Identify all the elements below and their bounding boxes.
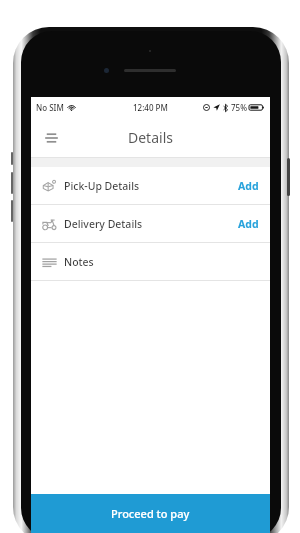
staticText: Notes [64,255,94,269]
staticText: Pick-Up Details [64,179,140,193]
button[interactable]: Notes [31,243,270,280]
staticText: 12:40 PM [133,102,168,113]
staticText: Proceed to pay [111,506,190,521]
button[interactable]: Proceed to pay [31,494,270,533]
button[interactable]: Menu [38,125,64,151]
staticText: 75% [231,102,247,113]
staticText: Add [238,217,259,231]
button[interactable]: Delivery Details [31,205,270,242]
button[interactable]: Pick-Up Details [31,167,270,204]
staticText: Details [128,128,173,147]
staticText: Delivery Details [64,217,143,231]
staticText: Add [238,179,259,193]
staticText: No SIM [36,102,64,113]
